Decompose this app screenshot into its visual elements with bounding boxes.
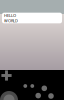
button[interactable]: Select	[0, 0, 64, 100]
button[interactable]: Start	[0, 0, 64, 100]
button[interactable]: Thumbstick	[0, 0, 64, 100]
button[interactable]: X	[0, 0, 64, 100]
button[interactable]: D-pad	[0, 0, 64, 100]
button[interactable]: B	[0, 0, 64, 100]
staticText: WORLD	[4, 18, 18, 23]
button[interactable]: A	[0, 0, 64, 100]
staticText: HELLO	[4, 13, 16, 18]
